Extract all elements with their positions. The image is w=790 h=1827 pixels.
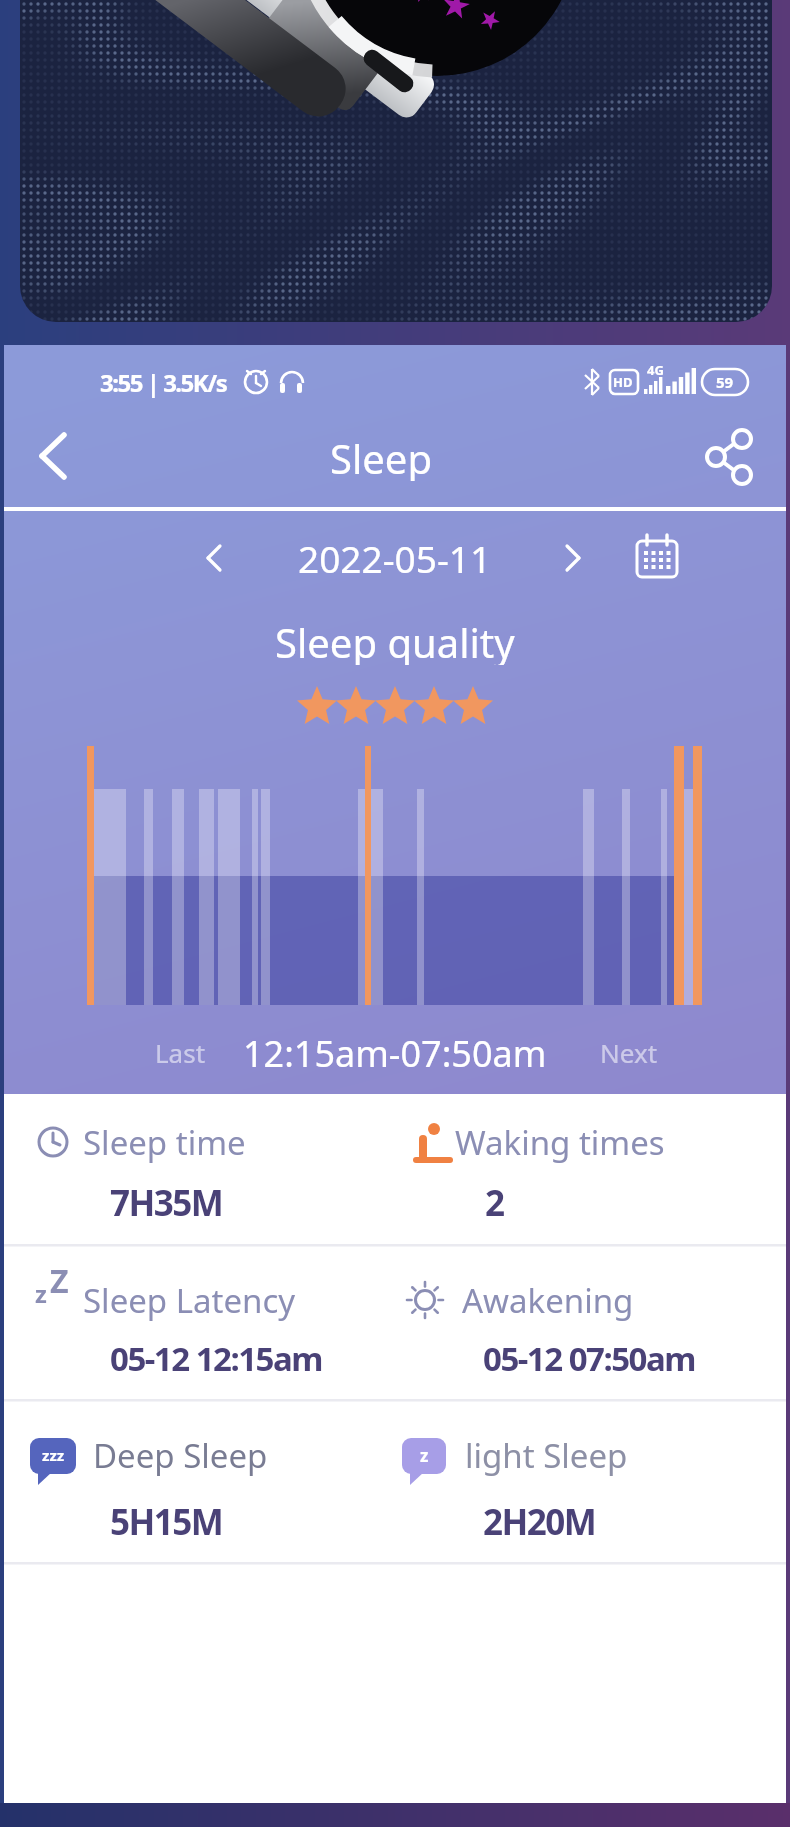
button[interactable] bbox=[190, 535, 238, 583]
staticText: 05-12 12:15am bbox=[110, 1336, 322, 1381]
staticText: Sleep bbox=[330, 431, 432, 481]
staticText: 2 bbox=[485, 1179, 504, 1227]
staticText: Sleep quality bbox=[275, 615, 515, 665]
staticText: Waking times bbox=[455, 1120, 665, 1165]
staticText: Last bbox=[155, 1035, 206, 1070]
staticText: 59 bbox=[716, 372, 734, 392]
staticText: 4G bbox=[647, 361, 664, 379]
button[interactable] bbox=[592, 1025, 662, 1071]
staticText: 5H15M bbox=[110, 1498, 223, 1546]
staticText: 7H35M bbox=[110, 1179, 223, 1227]
button[interactable] bbox=[144, 1025, 214, 1071]
button[interactable] bbox=[24, 425, 88, 489]
button[interactable] bbox=[630, 529, 686, 585]
staticText: Z bbox=[50, 1259, 69, 1303]
staticText: zzz bbox=[42, 1445, 65, 1465]
staticText: Deep Sleep bbox=[93, 1433, 268, 1478]
button[interactable] bbox=[700, 425, 766, 491]
staticText: 2022-05-11 bbox=[298, 533, 492, 583]
staticText: HD bbox=[613, 373, 633, 391]
staticText: z bbox=[35, 1277, 47, 1310]
button[interactable] bbox=[551, 535, 599, 583]
staticText: 3:55 | 3.5K/s bbox=[100, 366, 227, 399]
staticText: Sleep time bbox=[83, 1120, 246, 1165]
staticText: 2H20M bbox=[483, 1498, 596, 1546]
staticText: 05-12 07:50am bbox=[483, 1336, 695, 1381]
staticText: Next bbox=[600, 1035, 658, 1070]
staticText: Awakening bbox=[462, 1278, 634, 1323]
staticText: light Sleep bbox=[465, 1433, 628, 1478]
staticText: Sleep Latency bbox=[83, 1278, 296, 1323]
staticText: 12:15am-07:50am bbox=[243, 1029, 547, 1078]
staticText: z bbox=[420, 1444, 429, 1467]
